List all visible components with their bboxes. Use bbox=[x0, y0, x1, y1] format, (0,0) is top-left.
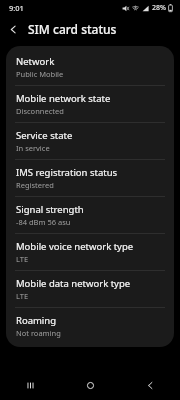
staticText: -84 dBm 56 asu bbox=[16, 217, 71, 227]
button[interactable]: Signal strength bbox=[6, 197, 174, 233]
staticText: Registered bbox=[16, 180, 54, 190]
staticText: Public Mobile bbox=[16, 69, 64, 79]
staticText: SIM card status bbox=[28, 21, 117, 37]
staticText: Mobile data network type bbox=[16, 277, 131, 290]
staticText: LTE bbox=[16, 291, 29, 301]
staticText: Not roaming bbox=[16, 328, 61, 338]
staticText: 28% bbox=[152, 3, 166, 13]
staticText: 9:01 bbox=[9, 3, 24, 13]
button[interactable]: IMS registration status bbox=[6, 160, 174, 196]
button[interactable]: Mobile voice network type bbox=[6, 234, 174, 270]
button[interactable]: Service state bbox=[6, 123, 174, 159]
button[interactable]: Roaming bbox=[6, 308, 174, 344]
button[interactable]: Navigate up bbox=[0, 16, 26, 42]
staticText: Disconnected bbox=[16, 106, 64, 116]
button[interactable]: Network bbox=[6, 49, 174, 85]
staticText: Roaming bbox=[16, 314, 57, 327]
button[interactable]: Recent apps bbox=[0, 370, 60, 400]
staticText: Service state bbox=[16, 129, 73, 142]
staticText: Signal strength bbox=[16, 203, 84, 216]
button[interactable]: Home bbox=[60, 370, 120, 400]
staticText: Mobile voice network type bbox=[16, 240, 134, 253]
button[interactable]: Mobile data network type bbox=[6, 271, 174, 307]
staticText: In service bbox=[16, 143, 50, 153]
button[interactable]: Mobile network state bbox=[6, 86, 174, 122]
staticText: LTE bbox=[16, 254, 29, 264]
button[interactable]: Back bbox=[120, 370, 180, 400]
staticText: Network bbox=[16, 55, 55, 68]
staticText: Mobile network state bbox=[16, 92, 111, 105]
staticText: IMS registration status bbox=[16, 166, 118, 179]
